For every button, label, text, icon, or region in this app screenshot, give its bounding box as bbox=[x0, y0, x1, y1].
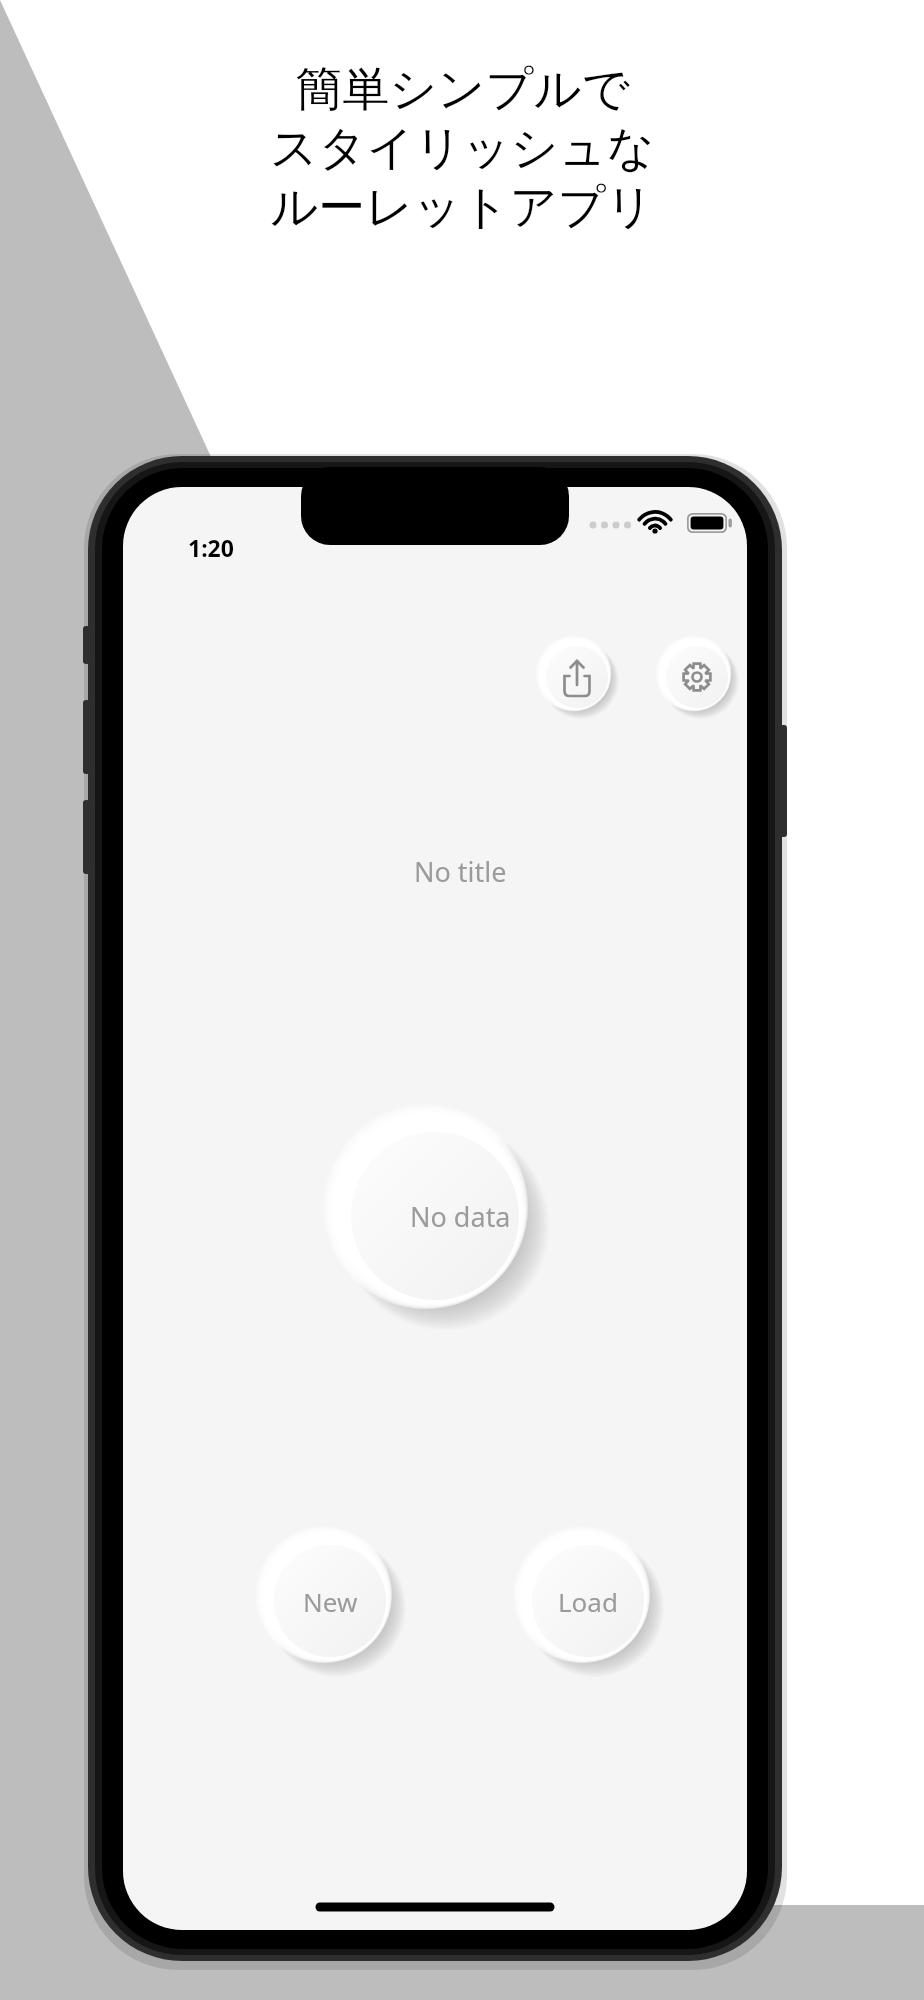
staticText: 簡単シンプルで bbox=[295, 60, 630, 119]
staticText: 1:20 bbox=[188, 532, 234, 562]
staticText: No data bbox=[410, 1198, 511, 1235]
staticText: ルーレットアプリ bbox=[270, 178, 654, 237]
button[interactable]: Share bbox=[546, 646, 608, 708]
button[interactable]: Settings bbox=[666, 646, 728, 708]
staticText: No title bbox=[414, 853, 507, 890]
staticText: スタイリッシュな bbox=[270, 119, 655, 178]
staticText: New bbox=[303, 1584, 358, 1619]
staticText: Load bbox=[558, 1584, 618, 1619]
button[interactable]: No title bbox=[357, 851, 563, 891]
button[interactable]: New bbox=[274, 1545, 386, 1657]
button[interactable]: No data bbox=[376, 1132, 544, 1300]
button[interactable]: Load bbox=[532, 1545, 644, 1657]
